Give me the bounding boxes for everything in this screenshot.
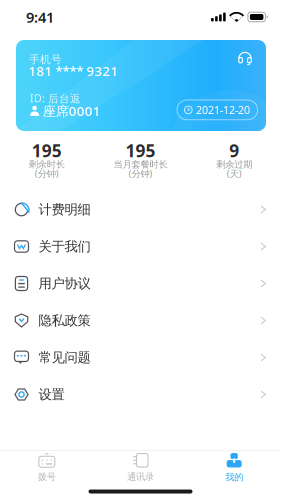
- staticText: (分钟): [128, 167, 152, 180]
- button[interactable]: 设置: [0, 376, 281, 413]
- button[interactable]: 隐私政策: [0, 302, 281, 339]
- staticText: 195: [125, 139, 155, 162]
- staticText: 9:41: [26, 7, 54, 27]
- staticText: 隐私政策: [38, 312, 90, 329]
- staticText: (天): [227, 167, 242, 180]
- button[interactable]: 用户协议: [0, 265, 281, 302]
- staticText: 我的: [225, 471, 243, 483]
- staticText: 用户协议: [38, 275, 90, 292]
- staticText: 剩余过期: [216, 159, 252, 170]
- staticText: 181 **** 9321: [28, 62, 118, 80]
- staticText: 2021-12-20: [196, 103, 250, 117]
- button[interactable]: 关于我们: [0, 228, 281, 265]
- staticText: 9: [229, 139, 239, 162]
- staticText: ID: 后台返: [30, 91, 81, 105]
- staticText: (分钟): [35, 167, 59, 180]
- staticText: 拨号: [38, 471, 56, 483]
- button[interactable]: 计费明细: [0, 191, 281, 228]
- button[interactable]: 在线客服: [232, 44, 258, 70]
- button[interactable]: 通讯录: [94, 447, 187, 487]
- button[interactable]: 常见问题: [0, 339, 281, 376]
- staticText: 座席0001: [43, 102, 101, 120]
- staticText: 常见问题: [38, 349, 90, 366]
- staticText: 计费明细: [38, 201, 90, 218]
- staticText: 195: [32, 139, 62, 162]
- staticText: 通讯录: [127, 471, 154, 483]
- staticText: 手机号: [29, 53, 62, 66]
- staticText: 设置: [38, 386, 64, 403]
- staticText: 剩余时长: [29, 159, 65, 170]
- button[interactable]: 拨号: [0, 447, 94, 487]
- staticText: 关于我们: [38, 238, 90, 255]
- button[interactable]: 我的: [187, 447, 281, 487]
- staticText: 当月套餐时长: [113, 159, 167, 170]
